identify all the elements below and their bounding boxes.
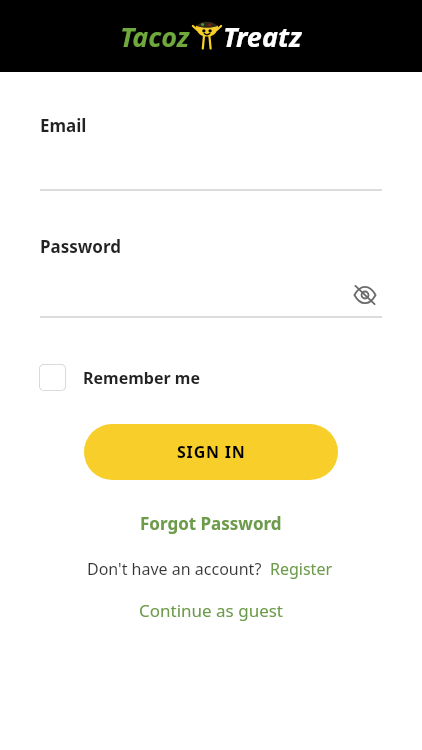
button[interactable]: Continue as guest [127, 595, 296, 626]
staticText: Treatz [223, 18, 302, 55]
staticText: Email [40, 114, 87, 137]
button[interactable]: Forgot Password [128, 508, 294, 539]
staticText: Don't have an account? [87, 558, 262, 580]
staticText: SIGN IN [177, 441, 246, 463]
staticText: Remember me [83, 367, 200, 389]
staticText: Forgot Password [140, 512, 282, 535]
staticText: Password [40, 235, 121, 258]
button[interactable]: Remember me [39, 364, 208, 391]
button[interactable]: Show password [348, 278, 382, 312]
button[interactable]: Register [268, 556, 335, 582]
staticText: Tacoz [120, 18, 190, 55]
button[interactable]: SIGN IN [84, 424, 338, 480]
staticText: Register [270, 558, 333, 580]
staticText: Continue as guest [139, 599, 284, 622]
